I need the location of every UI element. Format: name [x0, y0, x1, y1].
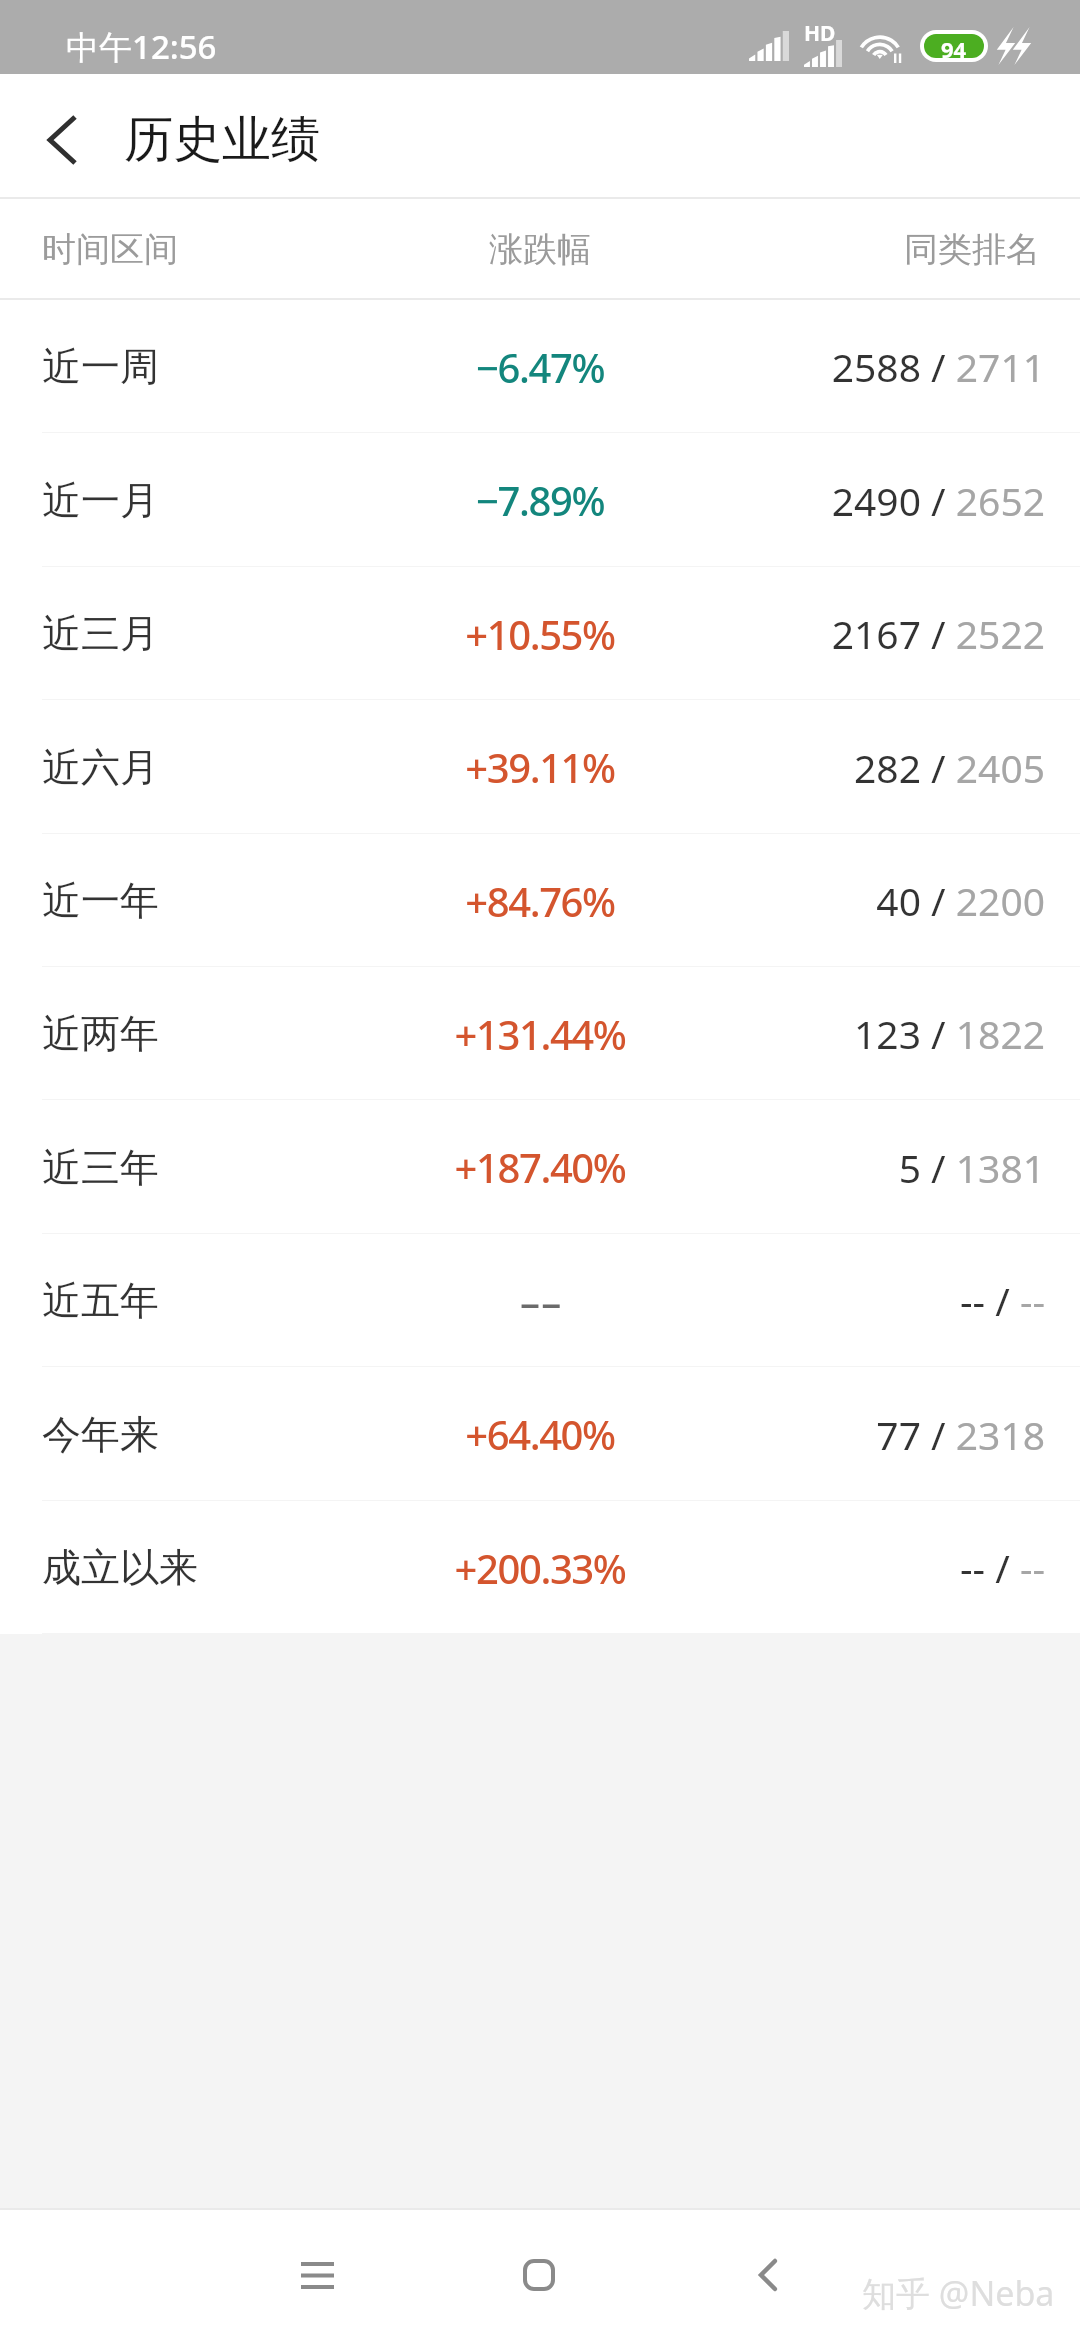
button[interactable]: 近两年 — [0, 967, 1080, 1100]
staticText: +131.44% — [360, 1007, 720, 1061]
staticText: 2490 / 2652 — [720, 474, 1045, 527]
staticText: 历史业绩 — [124, 109, 320, 171]
button[interactable]: 近六月 — [0, 700, 1080, 834]
staticText: 40 / 2200 — [720, 874, 1045, 927]
button[interactable]: 近三年 — [0, 1100, 1080, 1234]
staticText: 2588 / 2711 — [720, 340, 1045, 393]
staticText: – – — [360, 1274, 720, 1328]
button[interactable]: 成立以来 — [0, 1501, 1080, 1634]
button[interactable]: 今年来 — [0, 1367, 1080, 1501]
staticText: +10.55% — [360, 607, 720, 661]
button[interactable]: Back — [676, 2210, 860, 2340]
staticText: 近一年 — [42, 876, 360, 925]
staticText: 282 / 2405 — [720, 741, 1045, 794]
staticText: 成立以来 — [42, 1543, 360, 1592]
button[interactable]: 近五年 — [0, 1234, 1080, 1367]
staticText: 近六月 — [42, 743, 360, 792]
staticText: 近一月 — [42, 476, 360, 525]
staticText: +84.76% — [360, 874, 720, 928]
staticText: 近三月 — [42, 609, 360, 658]
button[interactable]: 近三月 — [0, 567, 1080, 700]
staticText: −7.89% — [360, 473, 720, 527]
button[interactable]: 近一月 — [0, 433, 1080, 567]
staticText: 5 / 1381 — [720, 1141, 1045, 1194]
staticText: 知乎 @Neba — [862, 2270, 1055, 2316]
staticText: 2167 / 2522 — [720, 607, 1045, 660]
staticText: 近五年 — [42, 1276, 360, 1325]
staticText: 77 / 2318 — [720, 1408, 1045, 1461]
staticText: +64.40% — [360, 1407, 720, 1461]
staticText: 近一周 — [42, 342, 360, 391]
staticText: 94 — [941, 34, 967, 58]
staticText: 中午12:56 — [66, 24, 217, 69]
staticText: HD — [804, 19, 836, 48]
button[interactable]: Recents — [225, 2210, 409, 2340]
staticText: -- / -- — [720, 1541, 1045, 1594]
button[interactable]: 近一周 — [0, 300, 1080, 433]
staticText: 123 / 1822 — [720, 1007, 1045, 1060]
button[interactable]: Back — [0, 74, 124, 199]
staticText: −6.47% — [360, 340, 720, 394]
staticText: +187.40% — [360, 1140, 720, 1194]
staticText: -- / -- — [720, 1274, 1045, 1327]
staticText: +200.33% — [360, 1541, 720, 1595]
staticText: 近两年 — [42, 1009, 360, 1058]
staticText: +39.11% — [360, 740, 720, 794]
staticText: 近三年 — [42, 1143, 360, 1192]
staticText: 同类排名 — [720, 228, 1040, 271]
button[interactable]: Home — [447, 2210, 631, 2340]
staticText: 涨跌幅 — [360, 228, 720, 271]
button[interactable]: 近一年 — [0, 834, 1080, 967]
staticText: 时间区间 — [42, 228, 360, 271]
staticText: 今年来 — [42, 1410, 360, 1459]
